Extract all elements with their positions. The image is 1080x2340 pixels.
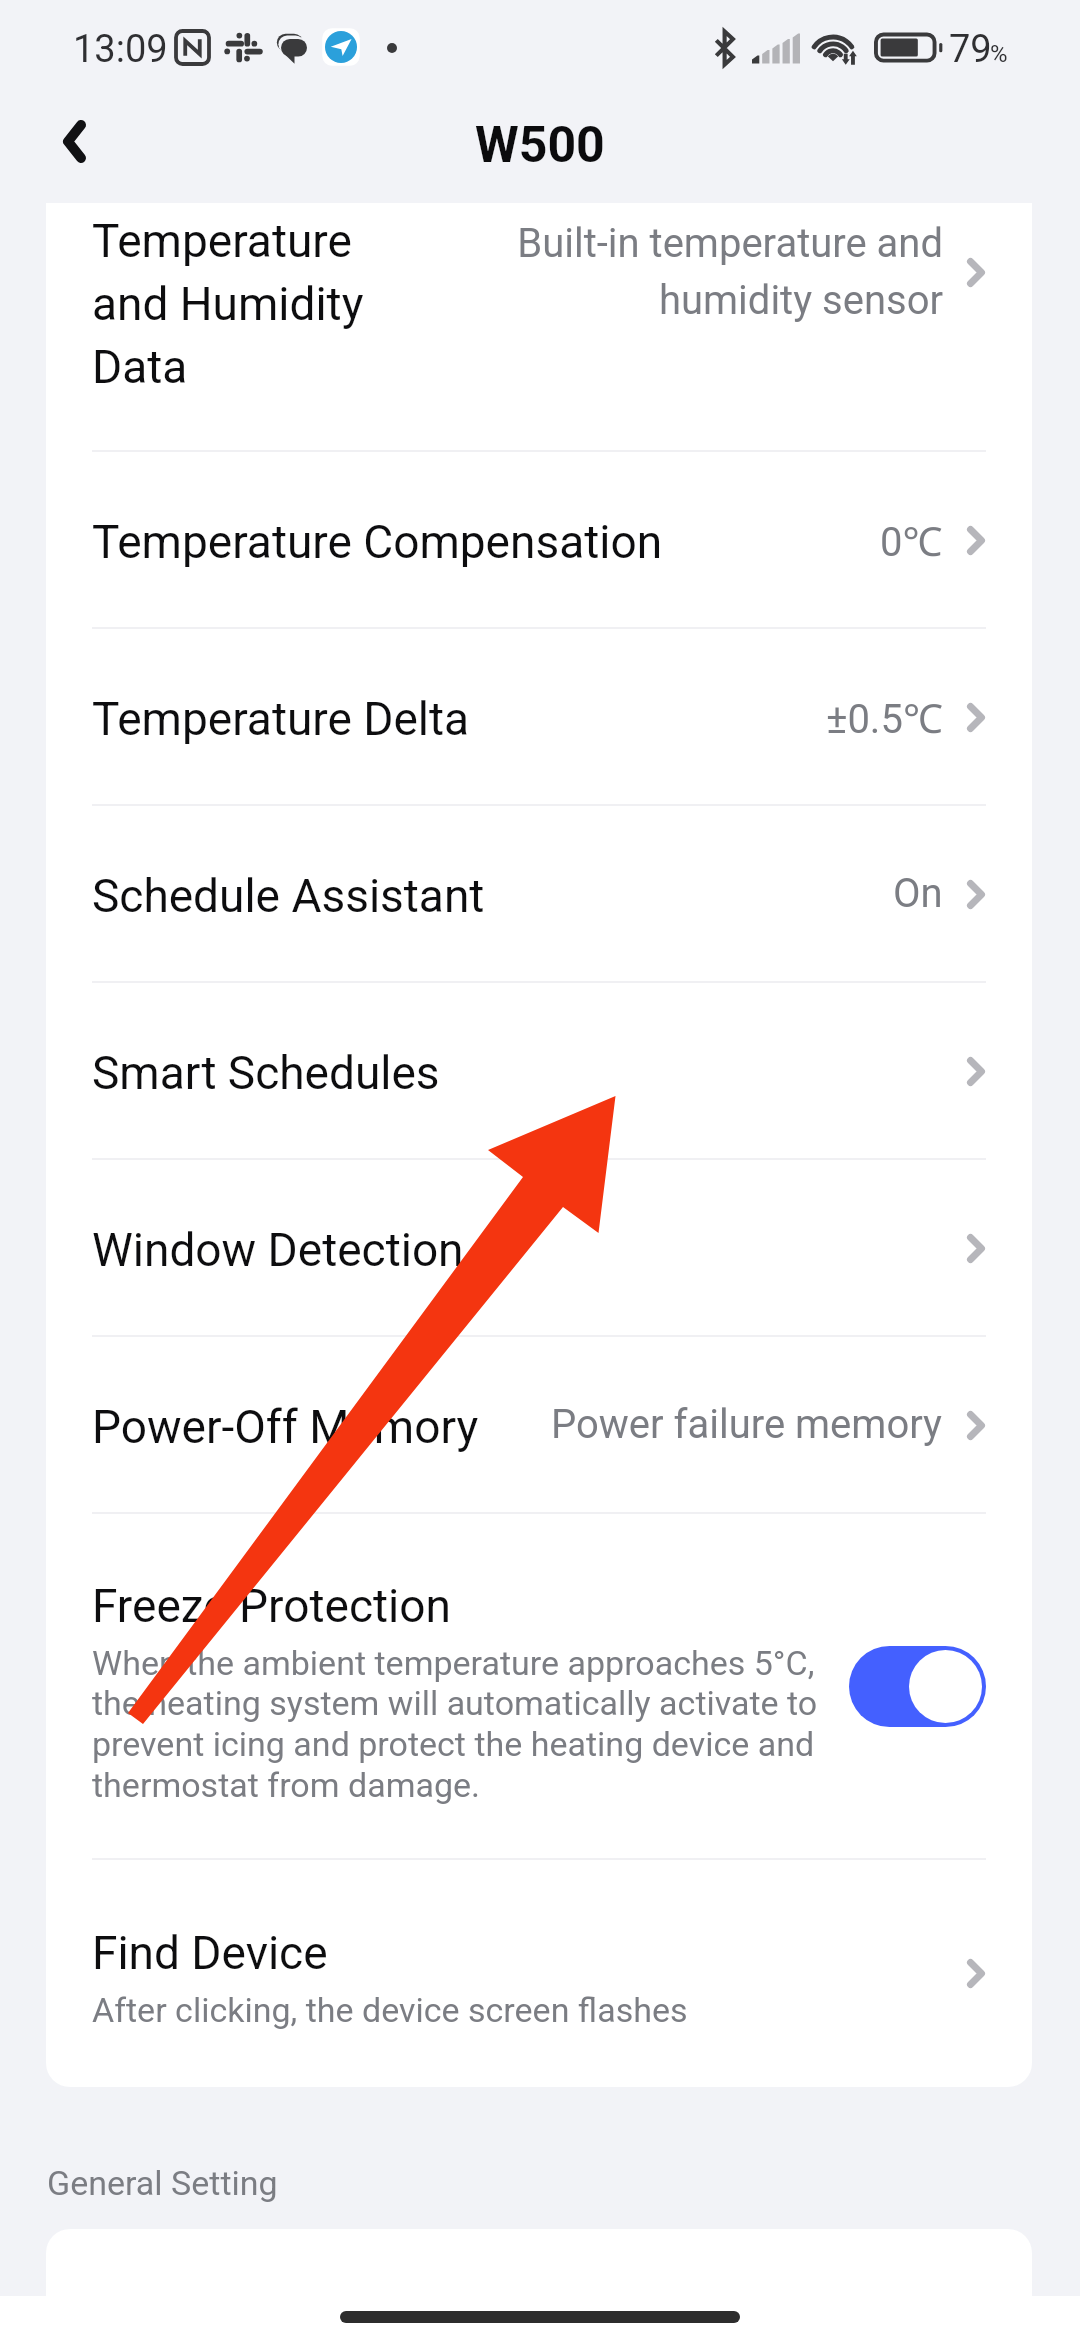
staticText: 13:09 [73, 27, 168, 72]
staticText: Built-in temperature and humidity sensor [511, 220, 943, 324]
staticText: Power failure memory [551, 1401, 943, 1448]
staticText: Freeze Protection [92, 1579, 451, 1633]
staticText: Temperature and Humidity Data [92, 214, 377, 394]
button[interactable]: Back [34, 101, 114, 181]
staticText: Schedule Assistant [92, 869, 893, 923]
staticText: 0℃ [880, 513, 943, 567]
staticText: W500 [475, 116, 605, 175]
button[interactable]: Power-Off Memory [46, 1337, 1032, 1514]
staticText: Smart Schedules [92, 1046, 967, 1100]
staticText: General Setting [47, 2163, 278, 2203]
staticText: Temperature Delta [92, 692, 826, 746]
staticText: 79 [949, 27, 992, 72]
button[interactable]: Temperature Compensation [46, 452, 1032, 629]
staticText: After clicking, the device screen flashe… [92, 1990, 688, 2030]
staticText: On [893, 870, 943, 917]
staticText: Find Device [92, 1926, 328, 1980]
button[interactable]: Smart Schedules [46, 983, 1032, 1160]
button[interactable]: Temperature Delta [46, 629, 1032, 806]
button[interactable]: Window Detection [46, 1160, 1032, 1337]
button[interactable]: Find Device [46, 1860, 1032, 2087]
button[interactable]: Freeze Protection toggle [849, 1646, 986, 1727]
staticText: When the ambient temperature approaches … [92, 1643, 832, 1806]
staticText: Power-Off Memory [92, 1400, 551, 1454]
button[interactable]: Freeze Protection [46, 1514, 1032, 1860]
staticText: ±0.5℃ [826, 690, 943, 744]
button[interactable]: Schedule Assistant [46, 806, 1032, 983]
button[interactable]: Temperature and Humidity Data [46, 203, 1032, 452]
staticText: % [990, 40, 1008, 68]
staticText: Window Detection [92, 1223, 967, 1277]
staticText: Temperature Compensation [92, 515, 880, 569]
